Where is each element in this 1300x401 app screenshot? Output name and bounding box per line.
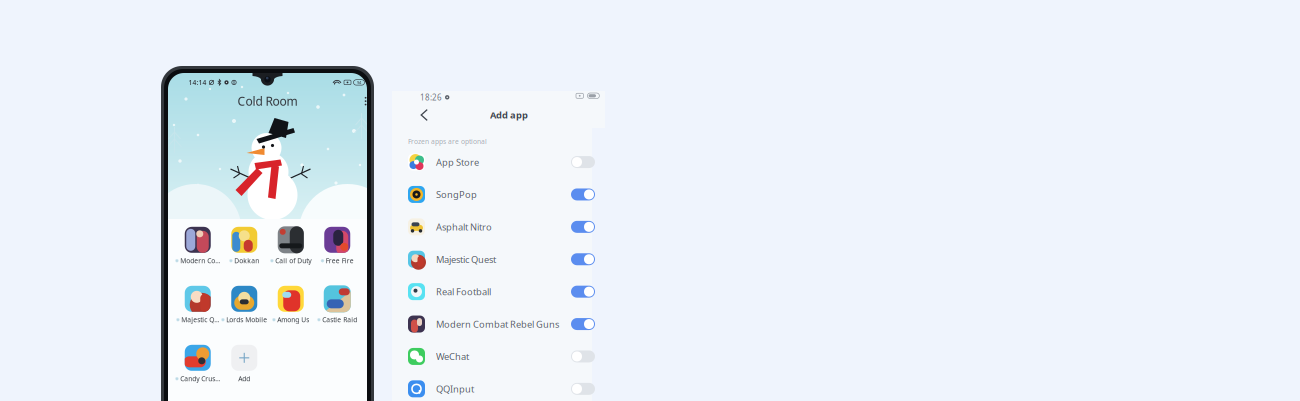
button[interactable]: Toggle SongPop	[563, 180, 595, 208]
button[interactable]: Toggle Asphalt Nitro	[563, 213, 595, 241]
staticText: WeChat	[436, 350, 469, 363]
staticText: Real Football	[436, 285, 491, 298]
button[interactable]: Add app	[221, 342, 267, 386]
staticText: QQInput	[436, 383, 474, 395]
staticText: Add app	[490, 109, 528, 121]
staticText: Call of Duty	[275, 256, 311, 265]
staticText: Castle Raid	[322, 315, 357, 324]
staticText: Add	[238, 374, 250, 383]
button[interactable]: Toggle Real Football	[563, 278, 595, 306]
button[interactable]: Dokkan	[221, 224, 267, 268]
button[interactable]: More options	[360, 92, 371, 110]
button[interactable]: Modern Co…	[174, 224, 221, 268]
button[interactable]: Among Us	[267, 283, 314, 327]
button[interactable]: Call of Duty	[267, 224, 314, 268]
button[interactable]: Back	[414, 103, 435, 127]
staticText: Majestic Quest	[436, 253, 496, 265]
staticText: Frozen apps are optional	[408, 137, 487, 146]
staticText: Majestic Q…	[181, 315, 219, 324]
button[interactable]: Castle Raid	[314, 283, 360, 327]
staticText: Among Us	[277, 315, 309, 324]
button[interactable]: Free Fire	[314, 224, 360, 268]
button[interactable]: Toggle Modern Combat Rebel Guns	[563, 310, 595, 338]
staticText: Candy Crus…	[180, 374, 220, 383]
button[interactable]: Toggle WeChat	[563, 342, 595, 370]
staticText: Cold Room	[237, 93, 297, 109]
button[interactable]: Candy Crus…	[174, 342, 221, 386]
staticText: 94	[357, 80, 361, 85]
button[interactable]: Lords Mobile	[221, 283, 267, 327]
staticText: Modern Combat Rebel Guns	[436, 318, 559, 330]
button[interactable]: Toggle QQInput	[563, 375, 595, 401]
staticText: Lords Mobile	[226, 315, 267, 324]
staticText: Dokkan	[234, 256, 259, 265]
staticText: Free Fire	[326, 256, 354, 265]
staticText: SongPop	[436, 188, 477, 201]
staticText: Asphalt Nitro	[436, 221, 492, 233]
button[interactable]: Toggle Majestic Quest	[563, 245, 595, 273]
staticText: Modern Co…	[180, 256, 220, 265]
button[interactable]: Majestic Q…	[174, 283, 221, 327]
staticText: 14:14	[188, 78, 206, 87]
staticText: App Store	[436, 156, 479, 168]
staticText: 18:26	[420, 92, 442, 103]
button[interactable]: Toggle App Store	[563, 148, 595, 176]
